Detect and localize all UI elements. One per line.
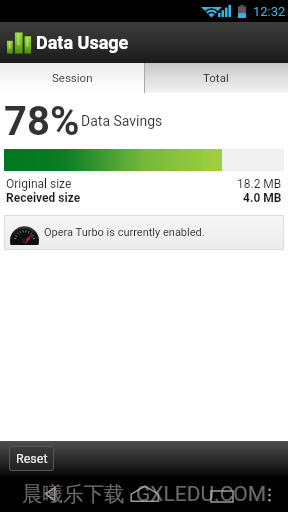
button[interactable]: Recent apps [205,486,239,506]
staticText: Data Usage [36,32,129,53]
staticText: 晨曦乐下载 [22,481,125,507]
button[interactable]: Reset [9,446,54,471]
button[interactable]: Home [127,482,161,504]
staticText: 18.2 MB [237,177,282,191]
staticText: Total [203,71,229,84]
button[interactable]: Opera Turbo is currently enabled. [4,215,284,250]
staticText: GXLEDU.COM [136,482,267,507]
button[interactable]: Total [144,63,288,93]
staticText: Data Savings [81,113,163,129]
button[interactable]: Session [0,63,144,93]
staticText: 78% [4,98,80,142]
button[interactable]: Back [34,484,68,504]
button[interactable]: More options [258,482,280,508]
staticText: Original size [6,177,72,191]
staticText: Received size [6,191,81,205]
staticText: Reset [16,451,48,466]
staticText: Session [52,71,93,84]
staticText: 4.0 MB [243,191,282,205]
staticText: Opera Turbo is currently enabled. [44,226,205,239]
staticText: 12:32 [253,4,286,19]
